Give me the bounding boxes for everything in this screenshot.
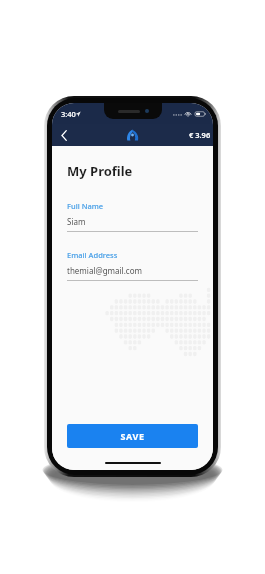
staticText: themial@gmail.com <box>67 265 142 276</box>
button[interactable]: Back <box>56 127 72 143</box>
button[interactable]: SAVE <box>67 424 198 448</box>
button[interactable]: Siam <box>67 216 198 232</box>
button[interactable]: themial@gmail.com <box>67 265 198 281</box>
staticText: My Profile <box>67 162 133 180</box>
staticText: 3:40 <box>61 109 76 119</box>
staticText: Email Address <box>67 250 118 260</box>
button[interactable]: € 3.96 <box>189 130 211 140</box>
staticText: Full Name <box>67 201 104 211</box>
staticText: SAVE <box>120 430 145 442</box>
staticText: Siam <box>67 216 86 227</box>
